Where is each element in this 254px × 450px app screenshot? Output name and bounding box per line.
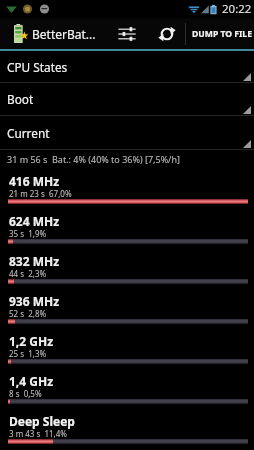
staticText: 25 s 1,3% <box>9 348 47 359</box>
button[interactable]: Boot <box>0 83 254 116</box>
staticText: 52 s 2,8% <box>9 308 47 319</box>
staticText: 8 s 0,5% <box>9 388 42 399</box>
staticText: 832 MHz <box>9 253 60 269</box>
button[interactable]: 936 MHz <box>0 290 254 330</box>
staticText: Deep Sleep <box>9 413 75 429</box>
staticText: BetterBat... <box>32 26 96 42</box>
button[interactable]: Deep Sleep <box>0 410 254 450</box>
staticText: 44 s 2,3% <box>9 268 47 279</box>
staticText: 31 m 56 s Bat.: 4% (40% to 36%) [7,5%/h] <box>7 153 180 165</box>
button[interactable]: Settings <box>109 19 145 49</box>
staticText: CPU States <box>7 59 68 75</box>
staticText: Boot <box>7 91 34 107</box>
staticText: 624 MHz <box>9 213 60 229</box>
button[interactable]: 624 MHz <box>0 210 254 250</box>
staticText: Current <box>7 125 50 141</box>
button[interactable]: CPU States <box>0 51 254 83</box>
staticText: 3 m 43 s 11,4% <box>9 428 67 439</box>
button[interactable]: Current <box>0 116 254 150</box>
button[interactable]: 1,2 GHz <box>0 330 254 370</box>
button[interactable]: Refresh <box>149 19 185 49</box>
staticText: 1,4 GHz <box>9 373 54 389</box>
button[interactable]: DUMP TO FILE <box>186 19 254 49</box>
button[interactable]: 416 MHz <box>0 170 254 210</box>
staticText: 21 m 23 s 67,0% <box>9 188 72 199</box>
staticText: 416 MHz <box>9 173 60 189</box>
button[interactable]: 832 MHz <box>0 250 254 290</box>
staticText: 35 s 1,9% <box>9 228 47 239</box>
staticText: 1,2 GHz <box>9 333 54 349</box>
staticText: 936 MHz <box>9 293 60 309</box>
button[interactable]: 1,4 GHz <box>0 370 254 410</box>
staticText: 20:22 <box>222 1 252 17</box>
staticText: DUMP TO FILE <box>192 28 252 40</box>
